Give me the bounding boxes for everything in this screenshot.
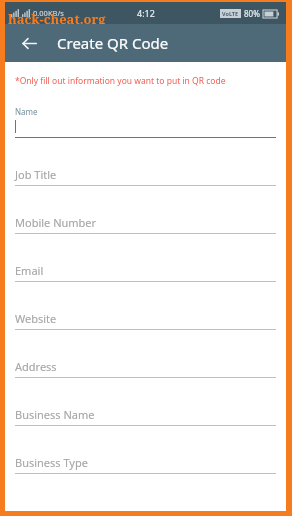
button[interactable]: Mobile Number <box>15 195 276 243</box>
staticText: 0.00KB/s <box>33 8 64 18</box>
staticText: 80% <box>244 8 260 19</box>
staticText: Name <box>15 106 38 117</box>
staticText: Email <box>15 263 44 278</box>
button[interactable]: Back <box>16 30 42 56</box>
staticText: 4:12 <box>137 7 155 19</box>
staticText: Create QR Code <box>57 33 169 53</box>
staticText: Job Title <box>15 167 57 182</box>
staticText: VoLTE <box>222 10 239 17</box>
staticText: Business Type <box>15 455 88 470</box>
staticText: *Only fill out information you want to p… <box>15 75 226 87</box>
button[interactable]: Name <box>15 99 276 147</box>
button[interactable]: Job Title <box>15 147 276 195</box>
button[interactable]: Website <box>15 291 276 339</box>
staticText: Website <box>15 311 57 326</box>
button[interactable]: Business Type <box>15 435 276 483</box>
staticText: Business Name <box>15 407 95 422</box>
button[interactable]: Address <box>15 339 276 387</box>
staticText: Address <box>15 359 57 374</box>
button[interactable]: Business Name <box>15 387 276 435</box>
staticText: Mobile Number <box>15 215 97 230</box>
button[interactable]: Email <box>15 243 276 291</box>
staticText: hack-cheat.org <box>8 10 106 28</box>
